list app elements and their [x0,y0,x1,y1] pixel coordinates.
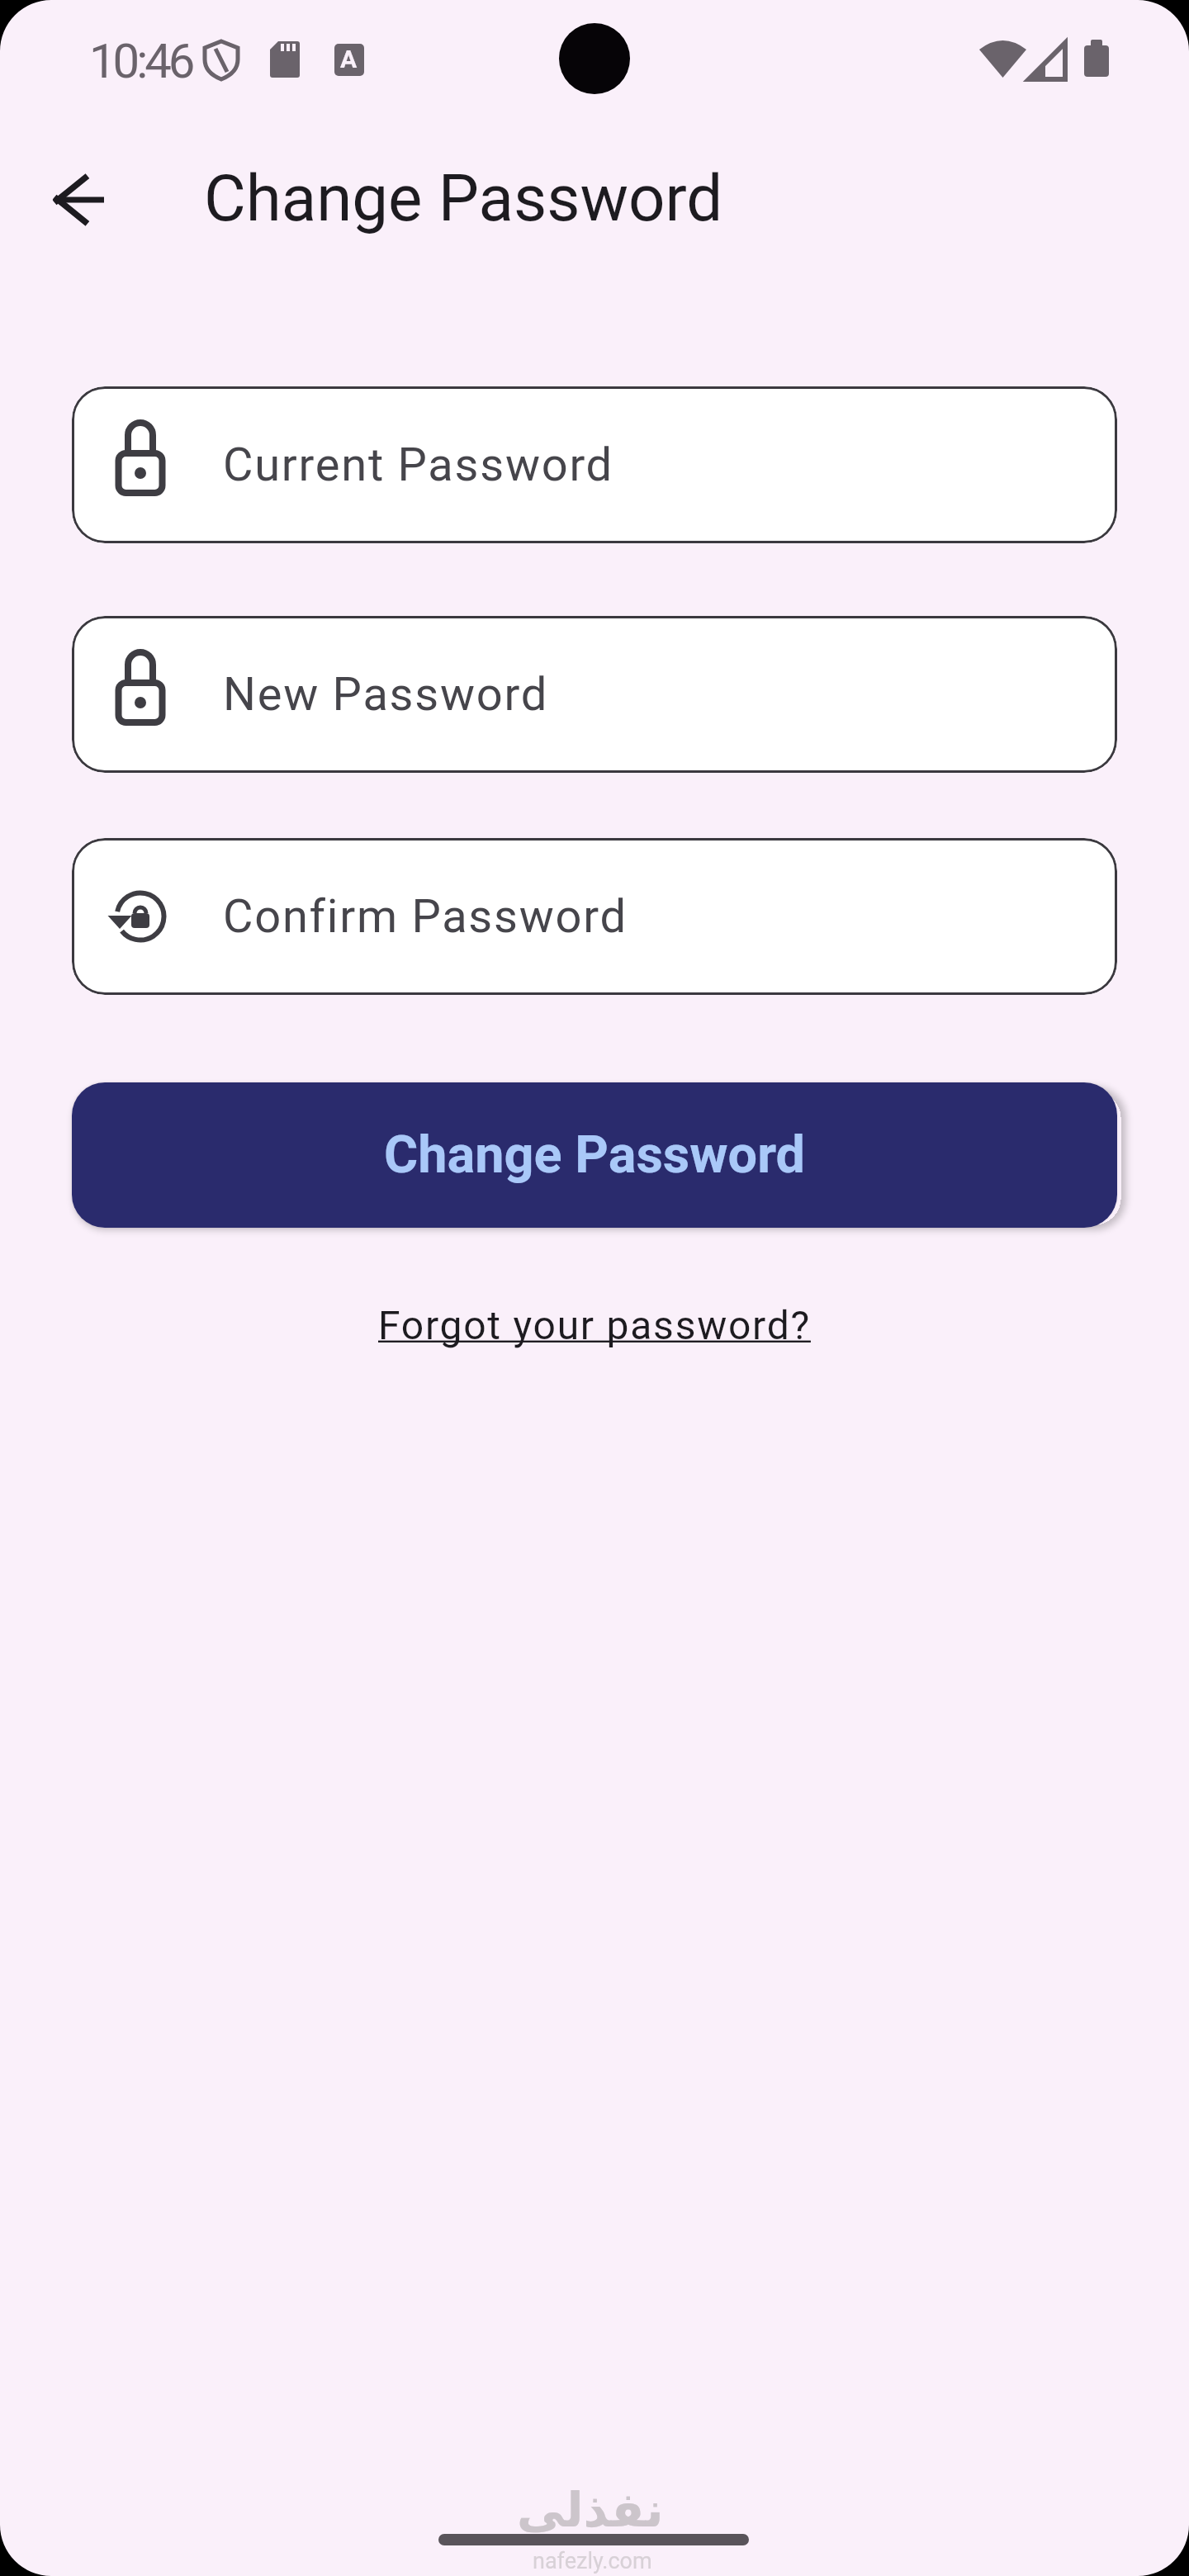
staticText: Forgot your password? [378,1302,811,1348]
staticText: Current Password [223,438,613,492]
button[interactable]: New Password [72,616,1117,773]
button[interactable]: Change Password [72,1082,1117,1228]
staticText: Change Password [384,1125,806,1186]
staticText: نفذلي [517,2482,664,2538]
button[interactable]: Confirm Password [72,838,1117,995]
staticText: 10:46 [89,33,192,89]
button[interactable]: Current Password [72,386,1117,543]
staticText: Change Password [204,161,723,236]
staticText: A [340,45,358,73]
staticText: New Password [223,667,548,722]
button[interactable]: Forgot your password? [378,1302,811,1348]
staticText: Confirm Password [223,889,628,944]
button[interactable] [48,168,114,234]
staticText: nafezly.com [533,2548,652,2574]
